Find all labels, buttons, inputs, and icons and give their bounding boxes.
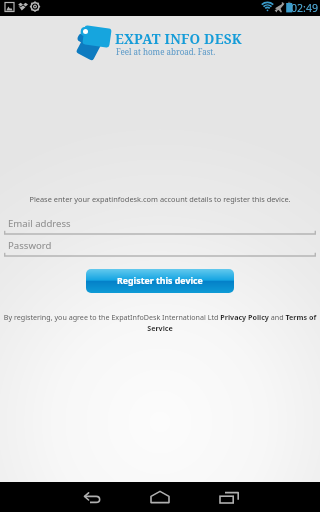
staticText: Password: [8, 239, 52, 252]
button[interactable]: Register this device: [86, 269, 234, 293]
staticText: EXPAT INFO DESK: [115, 30, 242, 48]
staticText: Register this device: [117, 275, 203, 287]
button[interactable]: Home: [134, 482, 186, 512]
staticText: 02:49: [291, 1, 319, 15]
staticText: By registering, you agree to the ExpatIn…: [2, 312, 318, 333]
staticText: Feel at home abroad. Fast.: [116, 46, 216, 57]
button[interactable]: Email address: [0, 216, 320, 237]
staticText: Please enter your expatinfodesk.com acco…: [8, 194, 312, 204]
button[interactable]: Back: [66, 482, 118, 512]
button[interactable]: Recent apps: [203, 482, 255, 512]
button[interactable]: Password: [0, 238, 320, 259]
staticText: Email address: [8, 217, 71, 230]
